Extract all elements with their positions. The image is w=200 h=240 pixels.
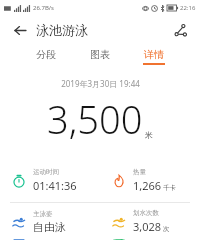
button[interactable]: 分段 (32, 47, 60, 66)
button[interactable]: 图表 (86, 47, 114, 66)
staticText: 划水次数 (133, 209, 159, 217)
staticText: 泳池游泳 (36, 22, 88, 38)
button[interactable]: 运动时间 (0, 159, 100, 202)
staticText: 26.7B/s (33, 4, 54, 12)
staticText: 千卡 (163, 184, 176, 192)
staticText: 次 (163, 225, 170, 233)
staticText: 详情 (144, 48, 164, 61)
button[interactable]: 热量 (100, 159, 200, 202)
button[interactable]: Back (8, 18, 32, 42)
staticText: 主泳姿 (33, 210, 53, 218)
staticText: 3,500 (47, 93, 143, 145)
staticText: 01:41:36 (33, 178, 77, 193)
staticText: 1,266 (133, 178, 162, 193)
staticText: 米 (145, 130, 153, 140)
staticText: 热量 (133, 168, 146, 176)
staticText: 图表 (90, 48, 110, 61)
staticText: 运动时间 (33, 168, 59, 176)
staticText: 分段 (36, 48, 56, 61)
button[interactable]: Share (168, 18, 192, 42)
button[interactable]: 详情 (140, 47, 168, 66)
staticText: 自由泳 (33, 220, 66, 234)
button[interactable]: 划水次数 (100, 203, 200, 240)
button[interactable]: 主泳姿 (0, 203, 100, 240)
staticText: 3,028 (133, 219, 162, 234)
staticText: 2019年3月30日 19:44 (61, 78, 140, 89)
staticText: 22:16 (180, 4, 196, 12)
